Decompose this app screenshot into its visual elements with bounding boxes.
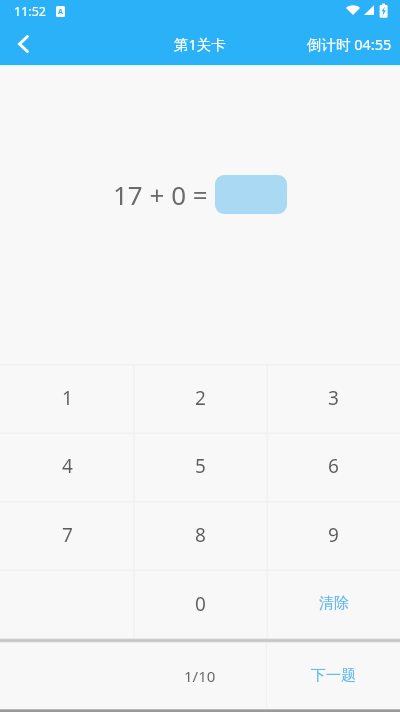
staticText: 1/10 xyxy=(184,666,216,686)
button[interactable]: Back xyxy=(0,22,48,65)
button[interactable]: 7 xyxy=(0,500,134,569)
button[interactable]: 4 xyxy=(0,432,134,500)
staticText: 0 xyxy=(195,591,206,617)
staticText: 4 xyxy=(62,453,73,479)
button[interactable]: 清除 xyxy=(267,569,400,638)
staticText: 清除 xyxy=(319,594,349,613)
button[interactable]: 6 xyxy=(267,432,400,500)
staticText: 9 xyxy=(328,522,339,548)
button[interactable]: 下一题 xyxy=(267,643,400,708)
staticText: A xyxy=(58,7,63,17)
staticText: 下一题 xyxy=(311,666,356,685)
button[interactable]: 9 xyxy=(267,500,400,569)
staticText: 6 xyxy=(328,453,339,479)
staticText: 11:52 xyxy=(14,3,46,20)
staticText: 3 xyxy=(328,385,339,411)
button[interactable]: 1 xyxy=(0,364,134,432)
staticText: 第1关卡 xyxy=(174,34,226,54)
staticText: 2 xyxy=(195,385,206,411)
button[interactable]: 2 xyxy=(134,364,267,432)
button[interactable]: 8 xyxy=(134,500,267,569)
staticText: 倒计时 04:55 xyxy=(307,34,392,54)
staticText: 17 + 0 = xyxy=(113,177,208,212)
staticText: 7 xyxy=(62,522,73,548)
button[interactable]: 0 xyxy=(134,569,267,638)
button[interactable]: 3 xyxy=(267,364,400,432)
button[interactable]: 5 xyxy=(134,432,267,500)
staticText: 1 xyxy=(62,385,73,411)
staticText: 8 xyxy=(195,522,206,548)
staticText: 5 xyxy=(195,453,206,479)
